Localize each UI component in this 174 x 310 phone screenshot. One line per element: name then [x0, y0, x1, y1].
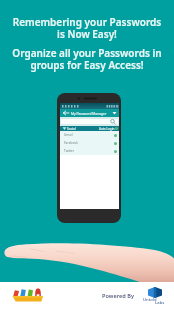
staticText: Powered By	[102, 292, 134, 300]
other: Back	[60, 109, 119, 117]
staticText: Organize all your Passwords in groups fo…	[0, 46, 174, 72]
staticText: Labs	[155, 300, 165, 306]
staticText: Auto Login	[99, 127, 115, 131]
staticText: Gmail	[64, 133, 73, 137]
staticText: Social	[67, 127, 76, 131]
staticText: My Password Manager	[71, 111, 107, 115]
staticText: Remembering your Passwords is Now Easy!	[0, 15, 174, 41]
other: More options	[60, 109, 119, 117]
button[interactable]: Social	[60, 126, 119, 131]
button[interactable]: Gmail	[60, 131, 119, 139]
other: Search	[60, 117, 119, 126]
button[interactable]: Facebook	[60, 139, 119, 147]
staticText: Facebook	[64, 141, 78, 145]
button[interactable]: Search	[60, 117, 119, 126]
staticText: Untold	[143, 297, 157, 303]
button[interactable]: Back	[60, 109, 119, 117]
staticText: Twitter	[64, 149, 75, 153]
button[interactable]: Twitter	[60, 147, 119, 155]
